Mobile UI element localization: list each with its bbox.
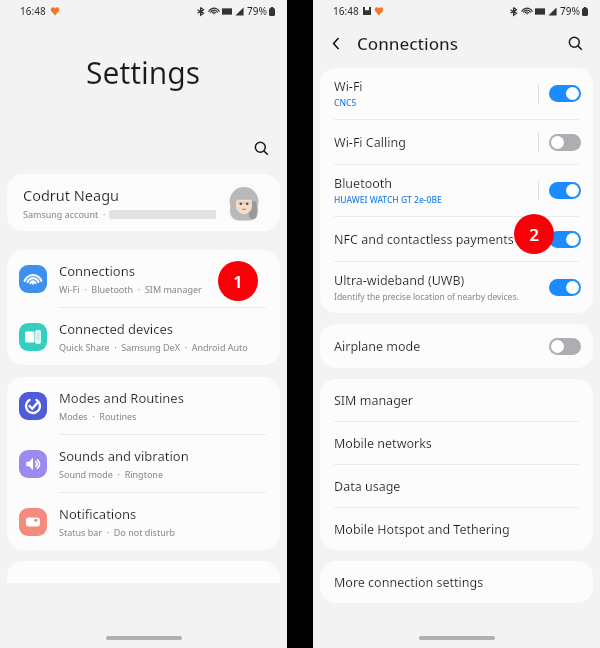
staticText: Mobile Hotspot and Tethering [334, 521, 510, 538]
staticText: 2 [529, 223, 539, 246]
button[interactable]: Airplane mode [320, 324, 593, 368]
button[interactable]: Bluetooth [320, 165, 593, 216]
staticText: CNC5 [334, 97, 357, 109]
staticText: Notifications [59, 505, 137, 523]
staticText: Sounds and vibration [59, 447, 189, 465]
staticText: Modes and Routines [59, 389, 184, 407]
staticText: Ultra-wideband (UWB) [334, 272, 465, 289]
staticText: Wi-Fi [334, 78, 363, 95]
button[interactable]: Modes and Routines [7, 377, 280, 434]
button[interactable]: On [549, 85, 581, 102]
button[interactable]: On [549, 279, 581, 296]
button[interactable]: On [549, 182, 581, 199]
staticText: Data usage [334, 478, 401, 495]
staticText: Status bar · Do not disturb [59, 526, 175, 538]
button[interactable]: Connected devices [7, 308, 280, 365]
button[interactable]: Search [558, 26, 592, 60]
staticText: Identify the precise location of nearby … [334, 291, 519, 303]
button[interactable]: Search [243, 130, 279, 166]
staticText: 16:48 [333, 4, 359, 18]
staticText: HUAWEI WATCH GT 2e-0BE [334, 194, 442, 206]
staticText: Quick Share · Samsung DeX · Android Auto [59, 341, 248, 353]
staticText: SIM manager [334, 392, 414, 409]
staticText: Airplane mode [334, 338, 421, 355]
staticText: Sound mode · Ringtone [59, 468, 163, 480]
button[interactable]: Codrut Neagu [7, 174, 280, 231]
staticText: Settings [86, 52, 201, 93]
button[interactable]: Wi-Fi [320, 68, 593, 119]
staticText: Mobile networks [334, 435, 432, 452]
button[interactable]: Off [549, 134, 581, 151]
button[interactable]: More connection settings [320, 561, 593, 603]
staticText: Connections [357, 32, 459, 55]
button[interactable]: SIM manager [320, 379, 593, 421]
staticText: NFC and contactless payments [334, 231, 514, 248]
button[interactable]: Data usage [320, 465, 593, 507]
staticText: Wi-Fi Calling [334, 134, 406, 151]
staticText: Connected devices [59, 320, 173, 338]
staticText: 79% [560, 4, 580, 18]
button[interactable]: Wi-Fi Calling [320, 120, 593, 164]
button[interactable]: Mobile networks [320, 422, 593, 464]
staticText: Wi-Fi · Bluetooth · SIM manager [59, 283, 202, 295]
button[interactable]: Connections [7, 250, 280, 307]
staticText: Samsung account · [23, 208, 106, 220]
button[interactable]: Ultra-wideband (UWB) [320, 262, 593, 313]
button[interactable]: Mobile Hotspot and Tethering [320, 508, 593, 550]
staticText: Bluetooth [334, 175, 393, 192]
staticText: 1 [233, 270, 243, 293]
staticText: Modes · Routines [59, 410, 137, 422]
staticText: Connections [59, 262, 135, 280]
button[interactable]: Back [319, 26, 353, 60]
staticText: 79% [247, 4, 267, 18]
button[interactable]: Notifications [7, 493, 280, 550]
button[interactable]: Sounds and vibration [7, 435, 280, 492]
button[interactable]: Off [549, 338, 581, 355]
button[interactable]: NFC and contactless payments [320, 217, 593, 261]
staticText: Codrut Neagu [23, 185, 120, 205]
button[interactable]: On [549, 231, 581, 248]
staticText: 16:48 [20, 4, 46, 18]
staticText: More connection settings [334, 574, 484, 591]
